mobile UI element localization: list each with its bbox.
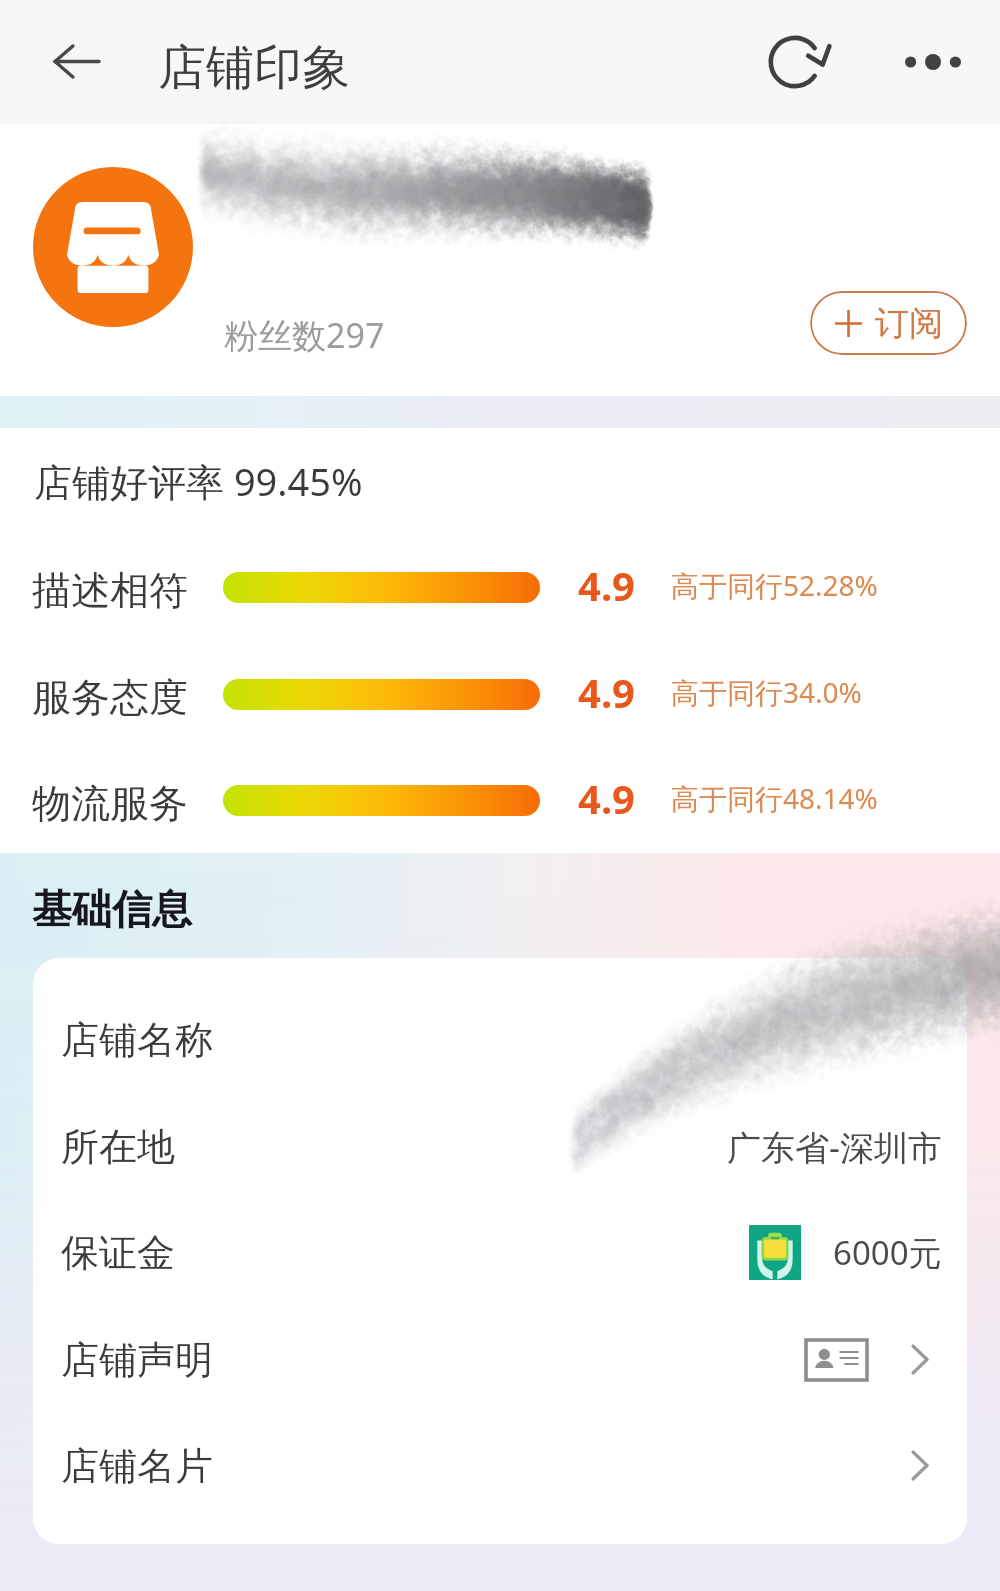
staticText: 广东省-深圳市	[727, 1124, 942, 1170]
staticText: 店铺名称	[61, 1016, 213, 1064]
button[interactable]: Back	[33, 23, 119, 99]
button[interactable]: Shop avatar	[33, 167, 193, 327]
staticText: 保证金	[61, 1229, 175, 1277]
staticText: 店铺好评率 99.45%	[34, 455, 363, 507]
staticText: 描述相符	[32, 566, 188, 615]
staticText: 订阅	[875, 302, 943, 345]
staticText: 高于同行34.0%	[671, 673, 862, 711]
staticText: 高于同行52.28%	[671, 566, 878, 604]
staticText: 所在地	[61, 1123, 175, 1171]
staticText: 店铺声明	[61, 1336, 213, 1384]
button[interactable]: 店铺声明	[33, 1306, 967, 1413]
staticText: 4.9	[578, 558, 635, 612]
staticText: 物流服务	[32, 779, 188, 828]
button[interactable]: Refresh	[760, 22, 840, 102]
staticText: 基础信息	[32, 884, 192, 934]
staticText: 高于同行48.14%	[671, 779, 878, 817]
staticText: 6000元	[833, 1230, 942, 1275]
staticText: 4.9	[578, 771, 635, 825]
button[interactable]: 所在地	[33, 1093, 967, 1200]
staticText: 4.9	[578, 665, 635, 719]
button[interactable]: 保证金	[33, 1199, 967, 1306]
staticText: 粉丝数297	[224, 312, 385, 358]
button[interactable]: 店铺名称	[33, 986, 967, 1093]
staticText: 服务态度	[32, 673, 188, 722]
button[interactable]: 订阅	[810, 291, 967, 355]
staticText: 店铺印象	[158, 38, 350, 98]
staticText: 店铺名片	[61, 1442, 213, 1490]
button[interactable]: 店铺名片	[33, 1412, 967, 1519]
button[interactable]: More options	[893, 24, 973, 100]
